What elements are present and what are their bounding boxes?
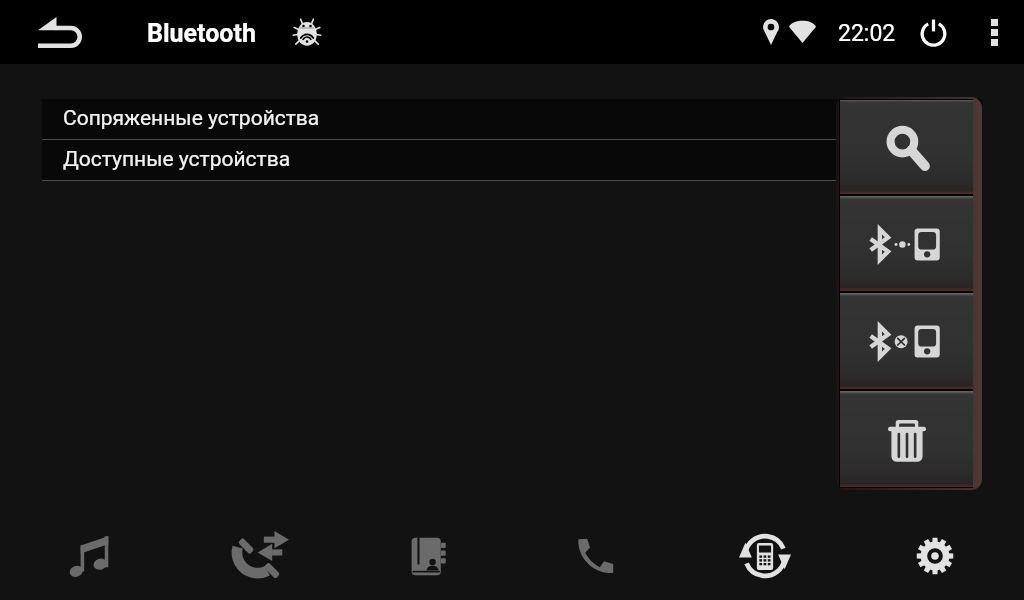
button[interactable]: Bluetooth <box>690 513 840 599</box>
button[interactable]: More options <box>976 12 1012 52</box>
button[interactable]: Back <box>24 8 96 56</box>
staticText: Доступные устройства <box>63 147 291 172</box>
button[interactable]: Music <box>14 513 164 599</box>
button[interactable]: Power <box>910 12 956 52</box>
button[interactable]: Disconnect device <box>840 294 973 389</box>
button[interactable]: Debug <box>288 13 326 51</box>
button[interactable]: Delete device <box>840 392 973 487</box>
button[interactable]: Search <box>840 100 973 194</box>
button[interactable]: Доступные устройства <box>42 140 982 180</box>
button[interactable]: Connect device <box>840 197 973 291</box>
staticText: 22:02 <box>838 20 896 47</box>
staticText: Bluetooth <box>147 19 256 48</box>
button[interactable]: Contacts <box>354 513 504 599</box>
button[interactable]: Call log <box>186 513 336 599</box>
staticText: Сопряженные устройства <box>63 106 320 131</box>
button[interactable]: Dial pad <box>521 513 671 599</box>
button[interactable]: Сопряженные устройства <box>42 99 982 139</box>
button[interactable]: Settings <box>860 513 1010 599</box>
